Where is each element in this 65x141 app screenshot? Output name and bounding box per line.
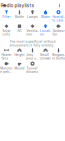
button[interactable]: Humidity care (52, 10, 65, 23)
staticText: Mould (14, 67, 24, 70)
button[interactable]: Small shower (39, 48, 52, 61)
staticText: Lamps (27, 15, 38, 19)
staticText: Tunnel blooms (26, 67, 38, 74)
button[interactable]: Bottle (13, 10, 26, 23)
button[interactable]: Height (13, 48, 26, 61)
button[interactable]: Jets pool simple (26, 48, 39, 61)
staticText: Height (14, 53, 24, 57)
button[interactable]: Moisture pebble (0, 61, 13, 74)
button[interactable]: Heater fans (0, 48, 13, 61)
button[interactable]: Location (39, 24, 52, 37)
staticText: AC (17, 29, 21, 33)
staticText: Ventilation (26, 29, 38, 36)
button[interactable]: Solar cells (0, 24, 13, 37)
button[interactable]: Tunnel blooms (26, 61, 39, 74)
staticText: Heater fans (1, 53, 11, 60)
button[interactable]: Filter (0, 10, 13, 23)
staticText: Outdoor fan (52, 29, 64, 36)
staticText: Water (41, 15, 50, 19)
button[interactable]: Water (39, 10, 52, 23)
button[interactable]: Lamps (26, 10, 39, 23)
staticText: Location (40, 29, 51, 36)
staticText: Humidity care (52, 15, 64, 22)
staticText: Moisture pebble (0, 67, 13, 74)
button[interactable]: More options (55, 1, 63, 10)
staticText: Solar cells (2, 29, 10, 36)
button[interactable]: Bergamot bottle (52, 48, 65, 61)
staticText: Bergamot bottle (52, 53, 65, 60)
staticText: Small shower (40, 53, 51, 60)
staticText: Filter (2, 15, 10, 19)
button[interactable]: Mould (13, 61, 26, 74)
staticText: Jets pool simple (26, 53, 39, 60)
button[interactable]: AC (13, 24, 26, 37)
staticText: Radio playlists (0, 2, 34, 8)
staticText: The most superficial without amusement i… (9, 40, 55, 47)
staticText: Bottle (15, 15, 24, 19)
button[interactable]: Back (0, 1, 9, 10)
button[interactable]: Ventilation (26, 24, 39, 37)
button[interactable]: Outdoor fan (52, 24, 65, 37)
